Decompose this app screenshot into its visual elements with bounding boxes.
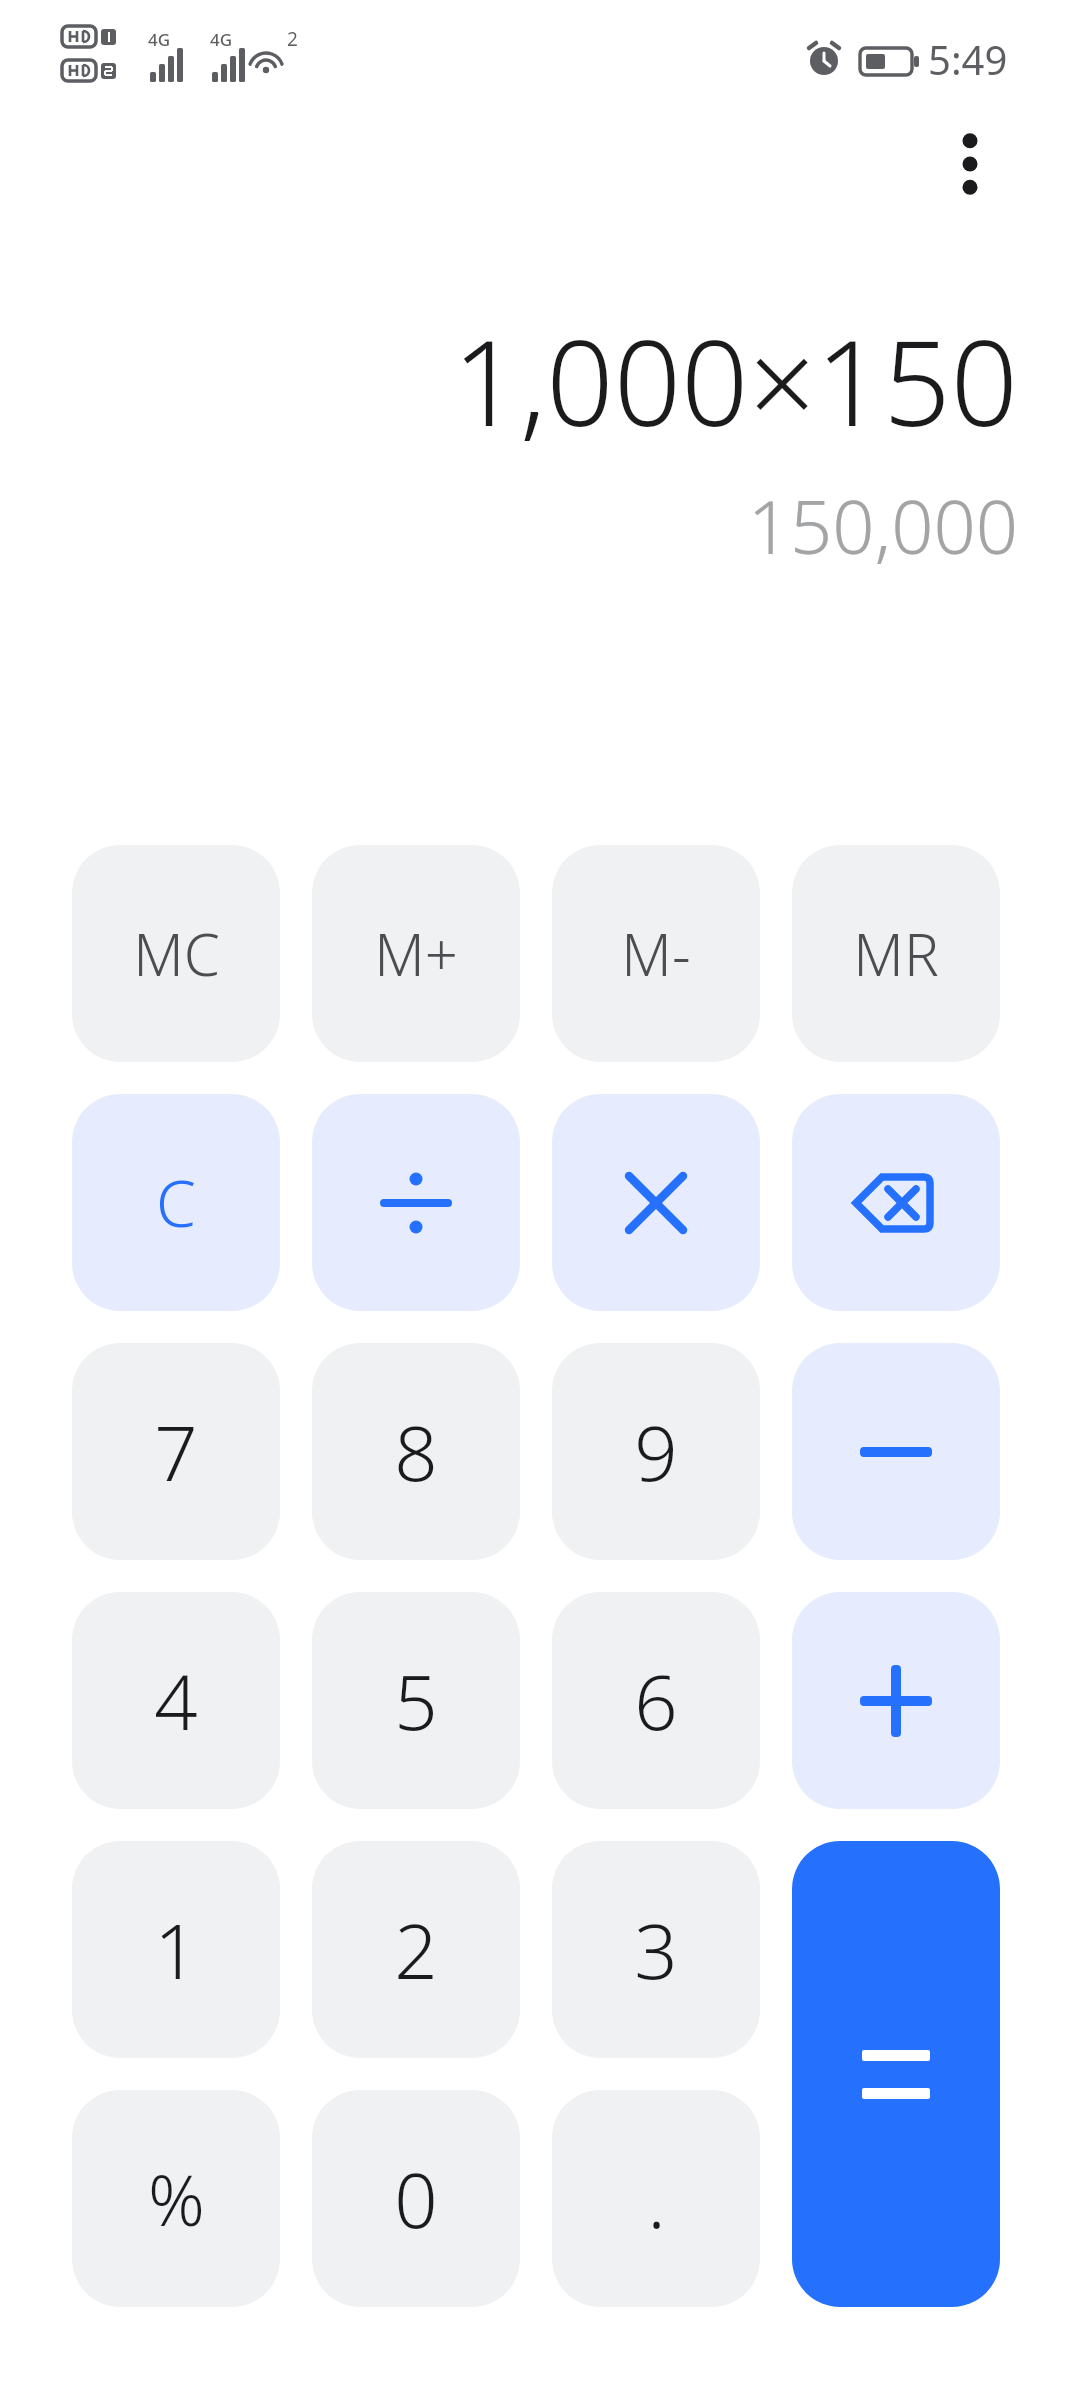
staticText: 4 bbox=[154, 1649, 198, 1753]
staticText: 6 bbox=[634, 1649, 678, 1753]
button[interactable]: 0 bbox=[312, 2090, 520, 2307]
staticText: C bbox=[156, 1159, 196, 1246]
button[interactable]: 3 bbox=[552, 1841, 760, 2058]
button[interactable]: 1 bbox=[72, 1841, 280, 2058]
staticText: 5:49 bbox=[928, 32, 1008, 86]
staticText: 1 bbox=[154, 1898, 198, 2002]
button[interactable]: 8 bbox=[312, 1343, 520, 1560]
button[interactable]: 2 bbox=[312, 1841, 520, 2058]
staticText: M+ bbox=[374, 914, 458, 993]
button[interactable]: 6 bbox=[552, 1592, 760, 1809]
button[interactable]: Equals bbox=[792, 1841, 1000, 2307]
button[interactable]: % bbox=[72, 2090, 280, 2307]
staticText: 150,000 bbox=[48, 475, 1018, 576]
button[interactable]: Plus bbox=[792, 1592, 1000, 1809]
staticText: % bbox=[148, 2151, 205, 2246]
staticText: 9 bbox=[634, 1400, 678, 1504]
button[interactable]: C bbox=[72, 1094, 280, 1311]
staticText: . bbox=[647, 2147, 666, 2251]
staticText: M- bbox=[621, 914, 691, 993]
button[interactable]: More options bbox=[916, 110, 1024, 218]
staticText: 2 bbox=[394, 1898, 438, 2002]
staticText: 5 bbox=[394, 1649, 438, 1753]
button[interactable]: Minus bbox=[792, 1343, 1000, 1560]
staticText: 3 bbox=[634, 1898, 678, 2002]
button[interactable]: Divide bbox=[312, 1094, 520, 1311]
staticText: 7 bbox=[154, 1400, 198, 1504]
button[interactable]: MR bbox=[792, 845, 1000, 1062]
button[interactable]: 9 bbox=[552, 1343, 760, 1560]
staticText: MC bbox=[133, 914, 220, 993]
button[interactable]: 4 bbox=[72, 1592, 280, 1809]
button[interactable]: . bbox=[552, 2090, 760, 2307]
button[interactable]: Backspace bbox=[792, 1094, 1000, 1311]
button[interactable]: Multiply bbox=[552, 1094, 760, 1311]
button[interactable]: M- bbox=[552, 845, 760, 1062]
staticText: 8 bbox=[394, 1400, 438, 1504]
staticText: MR bbox=[853, 914, 939, 993]
staticText: 4G bbox=[210, 28, 233, 51]
button[interactable]: MC bbox=[72, 845, 280, 1062]
button[interactable]: 5 bbox=[312, 1592, 520, 1809]
staticText: 0 bbox=[394, 2147, 438, 2251]
button[interactable]: 7 bbox=[72, 1343, 280, 1560]
staticText: 2 bbox=[287, 26, 298, 52]
staticText: 4G bbox=[148, 28, 171, 51]
staticText: 1,000×150 bbox=[48, 300, 1018, 461]
button[interactable]: M+ bbox=[312, 845, 520, 1062]
